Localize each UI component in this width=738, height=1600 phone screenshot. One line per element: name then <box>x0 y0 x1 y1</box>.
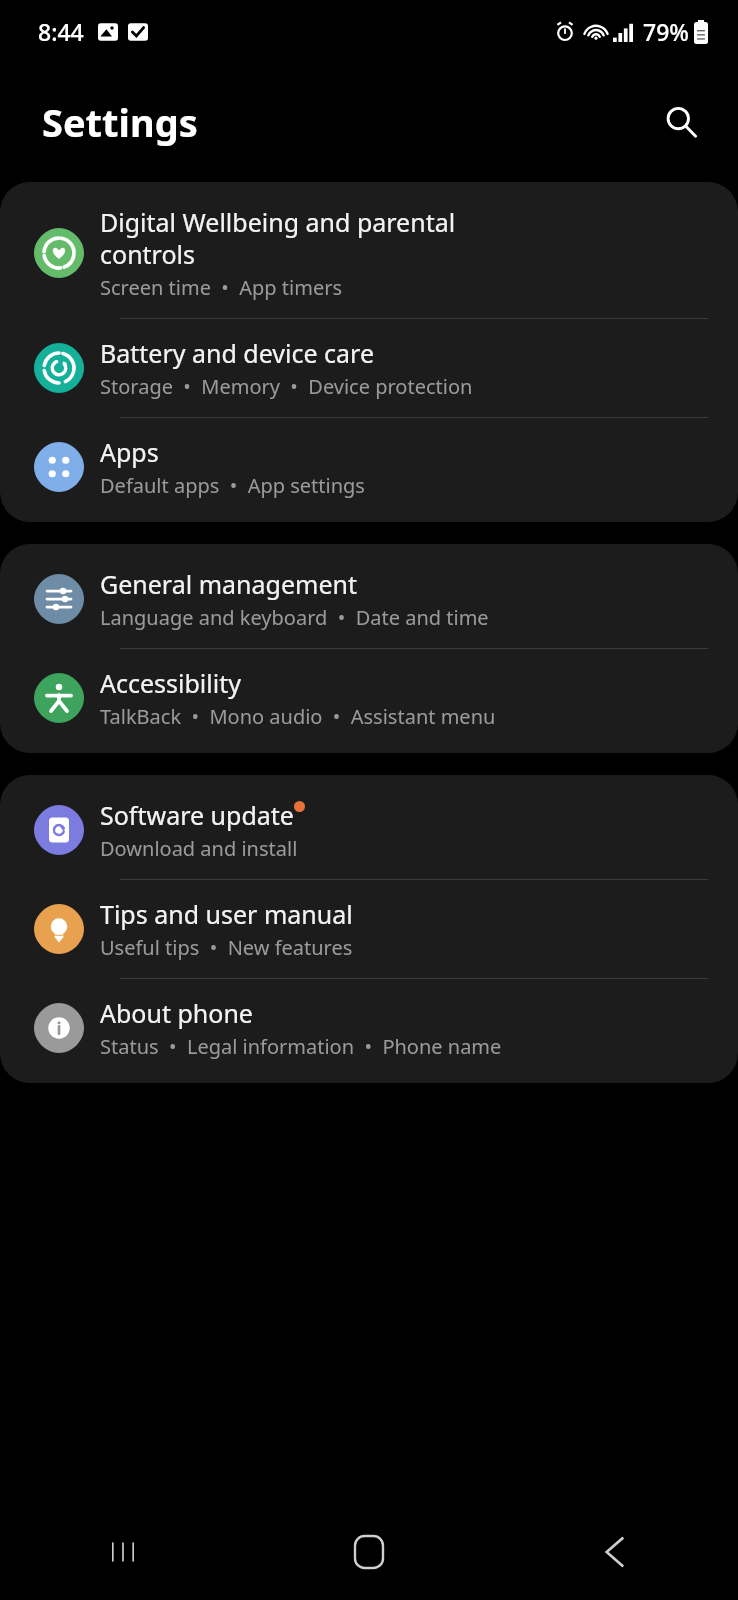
button[interactable]: General management <box>0 550 738 648</box>
staticText: Software update <box>100 798 294 832</box>
button[interactable]: Recent apps <box>0 1504 246 1600</box>
button[interactable]: Digital Wellbeing and parental controls <box>0 188 738 318</box>
staticText: Language and keyboard • Date and time <box>100 604 489 631</box>
staticText: 8:44 <box>38 16 84 47</box>
staticText: Tips and user manual <box>100 897 353 931</box>
staticText: Storage • Memory • Device protection <box>100 373 473 400</box>
button[interactable]: Search <box>652 93 710 151</box>
button[interactable]: Back <box>492 1504 738 1600</box>
staticText: Settings <box>42 96 198 148</box>
staticText: Status • Legal information • Phone name <box>100 1033 502 1060</box>
staticText: Battery and device care <box>100 336 375 370</box>
staticText: Digital Wellbeing and parental controls <box>100 205 456 271</box>
button[interactable]: Battery and device care <box>0 319 738 417</box>
staticText: Accessibility <box>100 666 241 700</box>
staticText: Download and install <box>100 835 298 862</box>
button[interactable]: Accessibility <box>0 649 738 747</box>
button[interactable]: Apps <box>0 418 738 516</box>
staticText: 79% <box>643 16 689 47</box>
button[interactable]: About phone <box>0 979 738 1077</box>
staticText: About phone <box>100 996 253 1030</box>
staticText: Apps <box>100 435 159 469</box>
button[interactable]: Tips and user manual <box>0 880 738 978</box>
button[interactable]: Home <box>246 1504 492 1600</box>
staticText: TalkBack • Mono audio • Assistant menu <box>100 703 496 730</box>
staticText: Default apps • App settings <box>100 472 365 499</box>
button[interactable]: Software update <box>0 781 738 879</box>
staticText: Screen time • App timers <box>100 274 343 301</box>
staticText: Useful tips • New features <box>100 934 353 961</box>
staticText: General management <box>100 567 357 601</box>
